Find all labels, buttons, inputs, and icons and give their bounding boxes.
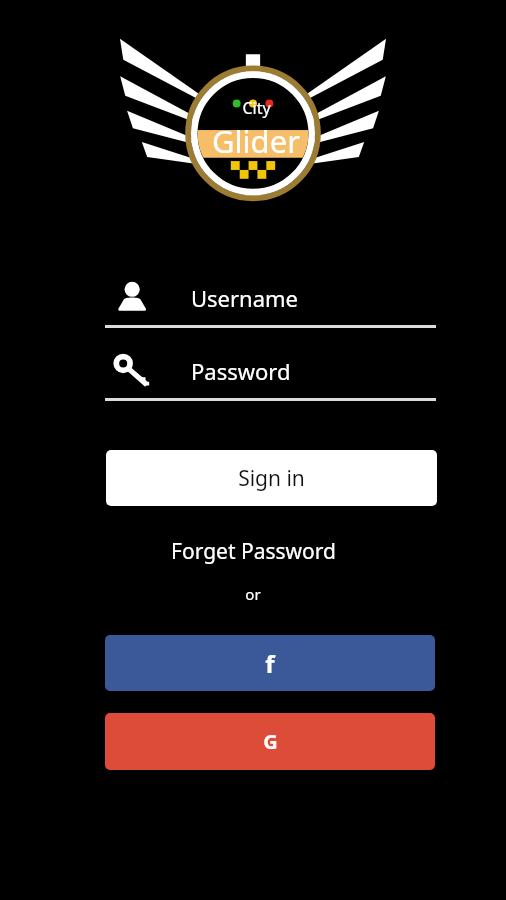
staticText: or — [245, 584, 261, 604]
other: Password — [105, 344, 163, 398]
button[interactable]: Sign in with Facebook — [105, 635, 435, 691]
staticText: f — [265, 647, 275, 680]
staticText: Glider — [212, 120, 300, 162]
button[interactable]: Password — [105, 344, 436, 398]
staticText: G — [263, 728, 278, 755]
staticText: City — [242, 97, 271, 119]
button[interactable]: Sign in — [106, 450, 437, 506]
button[interactable]: Sign in with Google — [105, 713, 435, 770]
button[interactable]: Forget Password — [0, 531, 506, 571]
button[interactable]: Username — [105, 271, 436, 325]
other: Username — [105, 271, 163, 325]
staticText: Forget Password — [171, 537, 336, 566]
staticText: Password — [191, 356, 291, 386]
staticText: Username — [191, 283, 299, 313]
staticText: Sign in — [238, 464, 305, 493]
